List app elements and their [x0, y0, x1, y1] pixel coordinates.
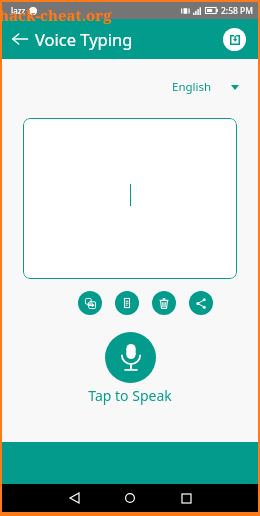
staticText: hack-cheat.org [0, 5, 112, 25]
button[interactable]: Delete [152, 291, 176, 315]
button[interactable]: Save note [115, 291, 139, 315]
button[interactable]: English [168, 75, 243, 99]
button[interactable]: Share [189, 291, 213, 315]
staticText: English [172, 79, 212, 95]
button[interactable]: Back [57, 484, 91, 512]
button[interactable]: Home [113, 484, 147, 512]
button[interactable]: Copy [78, 291, 102, 315]
staticText: Jazz [11, 5, 26, 16]
button[interactable]: Save [223, 28, 246, 51]
button[interactable]: Tap to Speak [105, 332, 156, 383]
button[interactable] [23, 118, 237, 279]
button[interactable]: Back [9, 28, 31, 50]
staticText: Voice Typing [35, 28, 133, 50]
button[interactable]: Recents [169, 484, 203, 512]
staticText: 2:58 PM [221, 5, 253, 17]
staticText: Tap to Speak [88, 386, 172, 405]
